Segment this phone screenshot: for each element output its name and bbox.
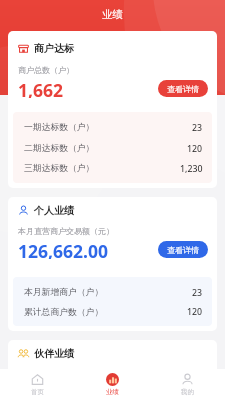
staticText: 商户达标 bbox=[34, 42, 74, 55]
staticText: 累计总商户数（户） bbox=[24, 307, 104, 318]
staticText: 120 bbox=[187, 143, 203, 155]
staticText: 本月新增商户（户） bbox=[24, 287, 104, 298]
staticText: 商户总数（户） bbox=[18, 65, 74, 75]
staticText: 120 bbox=[187, 306, 203, 318]
staticText: 查看详情 bbox=[167, 84, 199, 94]
staticText: 查看详情 bbox=[167, 245, 199, 255]
staticText: 业绩 bbox=[102, 8, 123, 21]
staticText: 126,662.00 bbox=[18, 239, 108, 259]
staticText: 一期达标数（户） bbox=[24, 122, 95, 133]
staticText: 1,662 bbox=[18, 78, 64, 98]
staticText: 伙伴业绩 bbox=[34, 347, 74, 360]
staticText: 我的 bbox=[181, 388, 194, 396]
button[interactable]: 查看详情 bbox=[158, 80, 208, 97]
button[interactable]: Home bbox=[23, 371, 52, 398]
staticText: 个人业绩 bbox=[34, 204, 74, 217]
staticText: 业绩 bbox=[106, 388, 119, 396]
button[interactable]: 业绩 bbox=[98, 371, 127, 398]
staticText: 1,230 bbox=[180, 163, 203, 175]
staticText: 首页 bbox=[31, 388, 44, 396]
button[interactable]: Profile bbox=[173, 371, 202, 398]
staticText: 23 bbox=[192, 122, 203, 134]
staticText: 三期达标数（户） bbox=[24, 163, 95, 174]
staticText: 23 bbox=[192, 287, 203, 299]
button[interactable]: 查看详情 bbox=[158, 241, 208, 258]
staticText: 本月直营商户交易额（元） bbox=[18, 226, 114, 236]
staticText: 二期达标数（户） bbox=[24, 143, 95, 154]
